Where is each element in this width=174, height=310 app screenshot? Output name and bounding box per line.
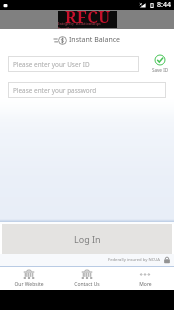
button[interactable]: Save ID	[150, 54, 170, 73]
staticText: Save ID	[150, 67, 170, 73]
staticText: Federally insured by NCUA	[108, 257, 161, 263]
button[interactable]: Contact Us	[58, 267, 116, 290]
button[interactable]: More	[116, 267, 174, 290]
staticText: RFCU	[65, 6, 111, 23]
staticText: Log In	[74, 233, 101, 245]
staticText: Please enter your password	[13, 86, 97, 95]
button[interactable]: Instant Balance	[0, 29, 174, 51]
staticText: Contact Us	[74, 281, 100, 288]
button[interactable]: Please enter your password	[8, 82, 166, 98]
staticText: 8:44	[157, 0, 171, 10]
staticText: Integrity Relationships Excellence	[58, 21, 117, 31]
button[interactable]: Our Website	[0, 267, 58, 290]
staticText: Instant Balance	[69, 35, 121, 45]
button[interactable]: Please enter your User ID	[8, 56, 139, 72]
button[interactable]: Log In	[2, 224, 172, 254]
staticText: Please enter your User ID	[13, 60, 90, 69]
staticText: Our Website	[14, 281, 44, 288]
staticText: More	[139, 281, 152, 288]
button[interactable]: RFCU logo	[58, 11, 117, 28]
